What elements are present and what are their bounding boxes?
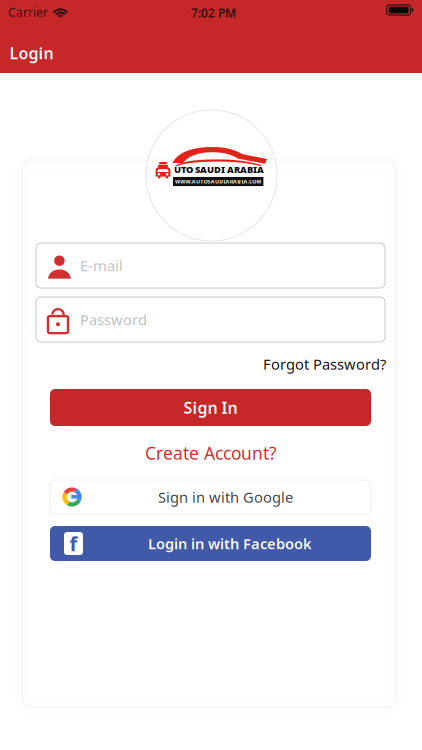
staticText: Create Account? xyxy=(145,441,277,464)
staticText: Login xyxy=(9,42,53,64)
staticText: Login in with Facebook xyxy=(148,534,312,553)
button[interactable]: Forgot Password? xyxy=(186,352,386,376)
button[interactable]: Password xyxy=(36,297,385,342)
button[interactable]: Create Account? xyxy=(111,441,311,465)
staticText: Password xyxy=(80,310,147,329)
staticText: UTO SAUDI ARABIA xyxy=(174,163,264,176)
button[interactable]: E-mail xyxy=(36,243,385,288)
staticText: Sign in with Google xyxy=(158,487,293,507)
staticText: Forgot Password? xyxy=(263,354,386,374)
staticText: E-mail xyxy=(80,256,123,275)
button[interactable]: Sign In xyxy=(50,389,371,426)
staticText: 7:02 PM xyxy=(191,5,236,19)
button[interactable]: f xyxy=(50,526,371,561)
staticText: f xyxy=(69,530,77,557)
staticText: Sign In xyxy=(183,397,237,418)
staticText: Carrier xyxy=(8,4,48,20)
staticText: WWW.AUTOSAUDIARABIA.COM xyxy=(175,178,261,185)
button[interactable]: Sign in with Google xyxy=(50,480,371,514)
